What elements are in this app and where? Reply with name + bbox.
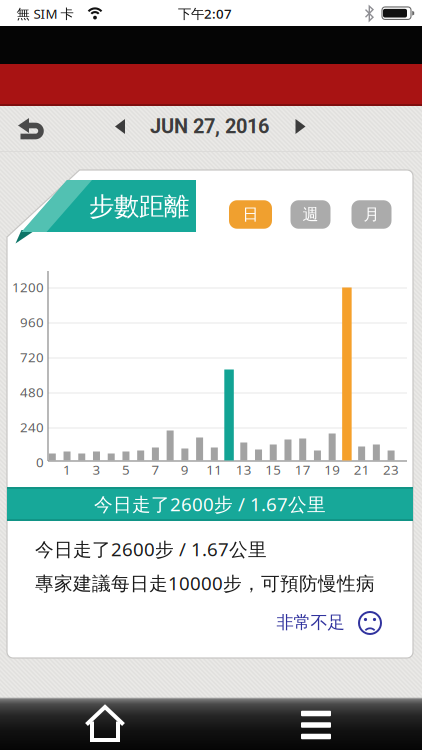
staticText: 3: [92, 461, 100, 478]
staticText: 960: [20, 313, 44, 331]
button[interactable]: Home: [83, 704, 127, 744]
staticText: 23: [383, 461, 399, 478]
staticText: 月: [363, 205, 379, 224]
button[interactable]: Previous day: [114, 118, 126, 134]
staticText: 15: [265, 461, 281, 478]
button[interactable]: 週: [290, 200, 330, 229]
button[interactable]: Menu: [296, 709, 336, 741]
button[interactable]: 月: [351, 200, 391, 229]
staticText: 下午2:07: [178, 5, 232, 22]
staticText: 無 SIM 卡: [16, 5, 73, 22]
staticText: 240: [20, 418, 44, 436]
staticText: 17: [295, 461, 311, 478]
staticText: JUN 27, 2016: [150, 115, 269, 138]
staticText: 步數距離: [89, 191, 189, 222]
staticText: 0: [36, 453, 44, 471]
staticText: 11: [206, 461, 222, 478]
button[interactable]: Next day: [294, 118, 306, 134]
staticText: 720: [20, 348, 44, 366]
staticText: 日: [242, 205, 258, 224]
staticText: 今日走了2600步 / 1.67公里: [35, 537, 267, 561]
staticText: 7: [151, 461, 159, 478]
staticText: 21: [354, 461, 370, 478]
staticText: 1: [63, 461, 71, 478]
staticText: 非常不足: [276, 612, 344, 633]
staticText: 專家建議每日走10000步，可預防慢性病: [35, 571, 375, 595]
staticText: 週: [302, 205, 318, 224]
staticText: 9: [181, 461, 189, 478]
staticText: 5: [122, 461, 130, 478]
staticText: 今日走了2600步 / 1.67公里: [94, 492, 326, 516]
button[interactable]: Back: [12, 113, 46, 141]
staticText: 19: [324, 461, 340, 478]
staticText: 13: [236, 461, 252, 478]
staticText: 1200: [12, 278, 44, 296]
staticText: 480: [20, 383, 44, 401]
button[interactable]: 日: [229, 200, 272, 229]
